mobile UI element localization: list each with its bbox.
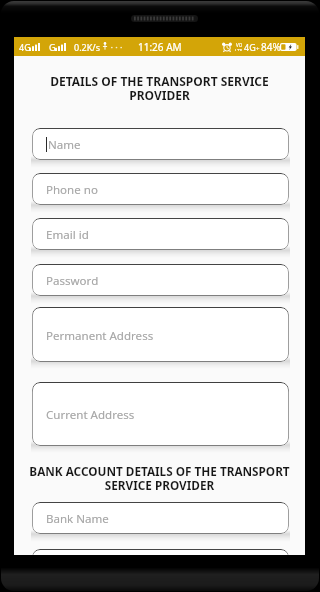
staticText: Email id	[46, 227, 89, 243]
staticText: Bank Name	[46, 511, 109, 527]
staticText: DETAILS OF THE TRANSPORT SERVICE PROVIDE…	[36, 73, 283, 103]
staticText: Current Address	[46, 407, 135, 423]
button[interactable]: Account Number	[32, 549, 289, 555]
button[interactable]: Name	[32, 128, 289, 160]
staticText: Password	[46, 273, 99, 289]
staticText: Permanent Address	[46, 328, 154, 344]
staticText: 11:26 AM	[138, 40, 182, 54]
staticText: VO	[236, 42, 243, 48]
button[interactable]: Password	[32, 264, 289, 296]
button[interactable]: Permanent Address	[32, 307, 289, 362]
staticText: +	[256, 45, 260, 53]
button[interactable]: Bank Name	[32, 502, 289, 534]
staticText: 0.2K/s	[74, 41, 100, 53]
staticText: 4G	[244, 41, 256, 53]
staticText: BANK ACCOUNT DETAILS OF THE TRANSPORT SE…	[18, 463, 301, 493]
staticText: 4G	[19, 41, 31, 53]
button[interactable]: Current Address	[32, 382, 289, 446]
staticText: Phone no	[46, 182, 98, 198]
button[interactable]: Email id	[32, 218, 289, 250]
staticText: G	[49, 41, 56, 53]
button[interactable]: Phone no	[32, 173, 289, 205]
staticText: LTE	[235, 48, 243, 51]
staticText: Name	[48, 137, 81, 153]
staticText: 84%	[261, 40, 281, 54]
